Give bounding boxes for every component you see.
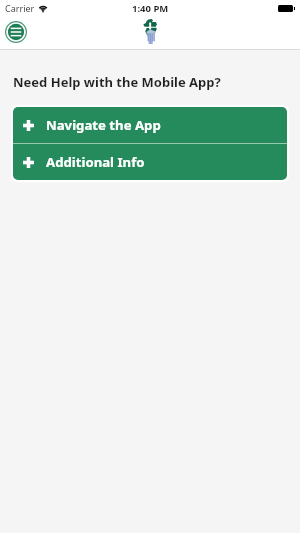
staticText: 1:40 PM <box>132 2 169 15</box>
button[interactable]: Navigate the App <box>13 107 287 143</box>
staticText: Additional Info <box>46 153 145 171</box>
staticText: Carrier <box>5 2 35 14</box>
button[interactable]: Additional Info <box>13 144 287 180</box>
staticText: Need Help with the Mobile App? <box>13 73 221 91</box>
button[interactable]: Menu <box>5 21 27 43</box>
staticText: Navigate the App <box>46 116 161 134</box>
